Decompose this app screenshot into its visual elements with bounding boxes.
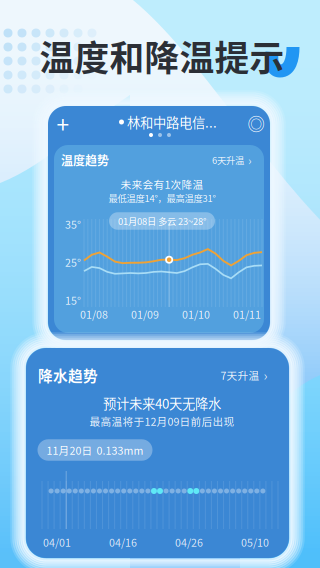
staticText: › — [248, 151, 252, 169]
staticText: 15° — [65, 292, 81, 308]
staticText: ◎ — [247, 110, 264, 136]
staticText: 01/10 — [182, 306, 210, 322]
staticText: + — [56, 107, 69, 139]
staticText: 04/01 — [43, 534, 71, 550]
staticText: 温度趋势 — [61, 151, 109, 169]
staticText: 35° — [65, 216, 81, 232]
button[interactable]: 林和中路电信... — [119, 107, 217, 137]
button[interactable]: Add city — [47, 109, 79, 137]
staticText: 01月08日 多云 23~28° — [118, 214, 206, 228]
staticText: 04/16 — [109, 534, 137, 550]
staticText: 最低温度14°，最高温度31° — [108, 191, 215, 205]
staticText: 7天升温 — [220, 367, 259, 383]
button[interactable]: Settings — [244, 111, 268, 135]
staticText: › — [263, 365, 267, 385]
button[interactable]: 7天升温 — [220, 361, 267, 389]
staticText: 01/08 — [80, 306, 108, 322]
staticText: 林和中路电信... — [127, 112, 217, 132]
staticText: 01/11 — [233, 306, 261, 322]
button[interactable]: 温度趋势 — [61, 147, 109, 173]
staticText: 未来会有1次降温 — [120, 176, 203, 192]
staticText: 温度和降温提示 — [39, 31, 284, 81]
staticText: 25° — [65, 254, 81, 270]
staticText: 降水趋势 — [38, 364, 98, 386]
button[interactable]: 降水趋势 — [38, 360, 98, 390]
staticText: 01/09 — [131, 306, 159, 322]
staticText: 预计未来40天无降水 — [103, 393, 221, 413]
staticText: 04/26 — [175, 534, 203, 550]
staticText: 05/10 — [241, 534, 269, 550]
staticText: 6天升温 — [212, 153, 244, 167]
staticText: 最高温将于12月09日前后出现 — [89, 413, 234, 429]
button[interactable]: 6天升温 — [212, 147, 252, 173]
staticText: 11月20日 0.133mm — [46, 442, 143, 458]
